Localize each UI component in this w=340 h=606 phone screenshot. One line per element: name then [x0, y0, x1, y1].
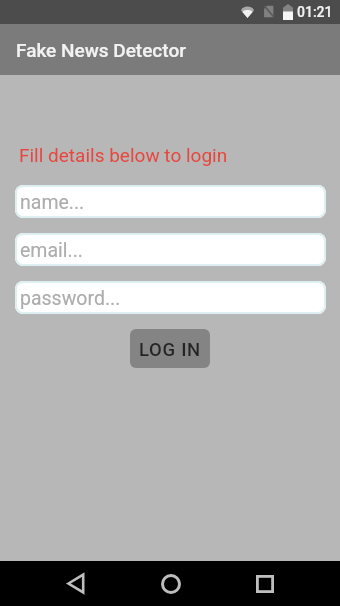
- staticText: password...: [20, 287, 121, 310]
- button[interactable]: name...: [15, 185, 326, 218]
- staticText: email...: [20, 239, 83, 262]
- button[interactable]: password...: [15, 281, 326, 314]
- button[interactable]: Back: [58, 566, 93, 601]
- staticText: Fake News Detector: [16, 39, 186, 61]
- button[interactable]: LOG IN: [130, 329, 210, 368]
- button[interactable]: email...: [15, 233, 326, 266]
- staticText: Fill details below to login: [19, 144, 228, 166]
- staticText: name...: [20, 191, 85, 214]
- button[interactable]: Recent apps: [247, 566, 282, 601]
- staticText: 01:21: [297, 4, 333, 20]
- button[interactable]: Home: [153, 566, 188, 601]
- staticText: LOG IN: [139, 339, 201, 361]
